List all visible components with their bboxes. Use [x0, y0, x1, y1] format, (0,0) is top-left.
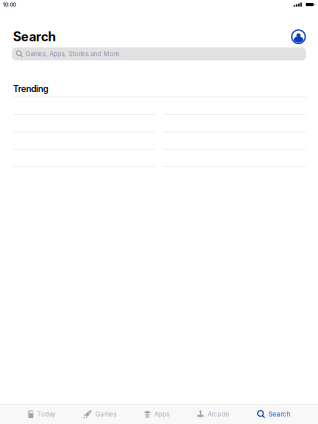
staticText: Trending [13, 83, 49, 94]
button[interactable]: Games [83, 406, 116, 422]
staticText: Search [269, 410, 291, 418]
button[interactable]: Games, Apps, Stories and More [12, 47, 306, 60]
staticText: Games, Apps, Stories and More [25, 50, 119, 58]
button[interactable]: Account [291, 29, 306, 44]
staticText: Games [95, 410, 116, 418]
staticText: Arcade [208, 410, 230, 418]
staticText: Search [13, 29, 56, 44]
button[interactable]: Today [27, 406, 56, 422]
staticText: Today [37, 410, 56, 418]
button[interactable]: Apps [144, 406, 169, 422]
staticText: 10:00 [3, 1, 16, 8]
staticText: Apps [154, 410, 169, 418]
button[interactable]: Arcade [197, 406, 230, 422]
button[interactable]: Search [257, 406, 291, 422]
